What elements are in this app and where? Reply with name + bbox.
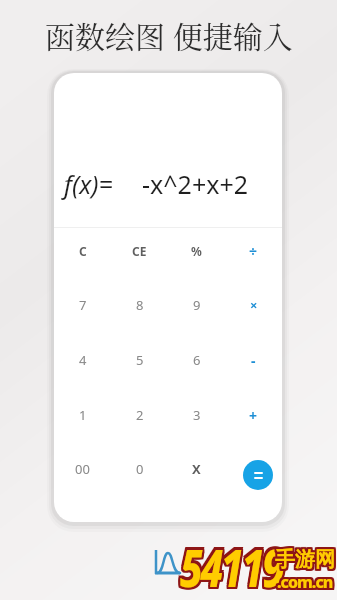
staticText: 手游网 <box>276 548 336 573</box>
button[interactable]: × <box>225 278 282 332</box>
staticText: 54119 <box>181 528 284 598</box>
staticText: 手游网 <box>275 547 335 572</box>
staticText: .com.cn <box>277 570 333 592</box>
staticText: .com.cn <box>278 571 334 593</box>
staticText: 54119 <box>179 530 282 600</box>
staticText: 54119 <box>182 530 285 600</box>
staticText: .com.cn <box>276 570 332 592</box>
button[interactable]: CE <box>111 224 168 278</box>
staticText: 手游网 <box>273 549 333 574</box>
staticText: 54119 <box>181 532 284 600</box>
staticText: 54119 <box>180 531 283 600</box>
staticText: 54119 <box>179 528 282 598</box>
staticText: 54119 <box>182 528 285 598</box>
staticText: 54119 <box>180 530 283 600</box>
staticText: 54119 <box>178 531 281 600</box>
staticText: .com.cn <box>278 570 334 592</box>
staticText: 函数绘图 便捷输入 <box>45 13 293 56</box>
staticText: .com.cn <box>278 569 334 591</box>
staticText: 54119 <box>180 528 283 598</box>
button[interactable]: 3 <box>168 388 225 442</box>
staticText: .com.cn <box>276 572 332 594</box>
staticText: C <box>79 243 87 259</box>
staticText: 手游网 <box>277 546 337 571</box>
staticText: 54119 <box>181 530 284 600</box>
staticText: 54119 <box>178 530 281 600</box>
button[interactable]: - <box>225 333 282 387</box>
staticText: 手游网 <box>274 548 334 573</box>
staticText: .com.cn <box>275 571 331 593</box>
staticText: 手游网 <box>275 546 335 571</box>
button[interactable]: 7 <box>54 278 111 332</box>
staticText: .com.cn <box>275 572 331 594</box>
staticText: × <box>250 296 258 314</box>
staticText: 54119 <box>178 532 281 600</box>
button[interactable]: 4 <box>54 333 111 387</box>
button[interactable]: C <box>54 224 111 278</box>
staticText: ÷ <box>249 242 258 261</box>
button[interactable]: % <box>168 224 225 278</box>
button[interactable]: X <box>168 442 225 496</box>
staticText: .com.cn <box>278 573 334 595</box>
button[interactable]: + <box>225 388 282 442</box>
staticText: CE <box>132 243 147 259</box>
staticText: .com.cn <box>279 569 335 591</box>
staticText: .com.cn <box>275 570 331 592</box>
staticText: 54119 <box>182 533 285 600</box>
button[interactable]: 1 <box>54 388 111 442</box>
staticText: .com.cn <box>279 572 335 594</box>
staticText: 手游网 <box>276 545 336 570</box>
staticText: 7 <box>79 296 87 314</box>
staticText: 5 <box>136 351 144 369</box>
staticText: 手游网 <box>276 546 336 571</box>
staticText: .com.cn <box>279 571 335 593</box>
staticText: 00 <box>75 460 90 478</box>
staticText: 9 <box>193 296 201 314</box>
staticText: .com.cn <box>276 569 332 591</box>
staticText: 手游网 <box>274 547 334 572</box>
staticText: 54119 <box>178 533 281 600</box>
staticText: 手游网 <box>274 546 334 571</box>
staticText: 54119 <box>179 531 282 600</box>
staticText: 0 <box>136 460 144 478</box>
staticText: 54119 <box>181 533 284 600</box>
button[interactable]: 0 <box>111 442 168 496</box>
button[interactable]: 9 <box>168 278 225 332</box>
button[interactable]: 2 <box>111 388 168 442</box>
staticText: 手游网 <box>275 549 335 574</box>
staticText: 手游网 <box>273 545 333 570</box>
button[interactable]: 5 <box>111 333 168 387</box>
staticText: 54119 <box>180 532 283 600</box>
staticText: .com.cn <box>275 573 331 595</box>
staticText: + <box>249 406 258 425</box>
button[interactable] <box>243 460 273 490</box>
button[interactable]: ÷ <box>225 224 282 278</box>
staticText: 手游网 <box>277 547 337 572</box>
staticText: 手游网 <box>276 547 336 572</box>
staticText: f(x)= <box>64 167 113 201</box>
staticText: 手游网 <box>274 549 334 574</box>
staticText: 54119 <box>179 533 282 600</box>
staticText: 手游网 <box>275 548 335 573</box>
staticText: .com.cn <box>277 571 333 593</box>
button[interactable]: 8 <box>111 278 168 332</box>
staticText: 手游网 <box>276 549 336 574</box>
staticText: 6 <box>193 351 201 369</box>
staticText: 2 <box>136 406 144 424</box>
staticText: 54119 <box>178 528 281 598</box>
staticText: 手游网 <box>277 549 337 574</box>
staticText: 54119 <box>179 532 282 600</box>
staticText: .com.cn <box>276 573 332 595</box>
staticText: .com.cn <box>277 572 333 594</box>
staticText: .com.cn <box>279 570 335 592</box>
staticText: 手游网 <box>273 548 333 573</box>
staticText: 手游网 <box>274 545 334 570</box>
staticText: 4 <box>79 351 87 369</box>
button[interactable]: 00 <box>54 442 111 496</box>
staticText: 8 <box>136 296 144 314</box>
button[interactable]: 6 <box>168 333 225 387</box>
staticText: .com.cn <box>278 572 334 594</box>
staticText: .com.cn <box>277 569 333 591</box>
staticText: 54119 <box>181 531 284 600</box>
staticText: .com.cn <box>279 573 335 595</box>
